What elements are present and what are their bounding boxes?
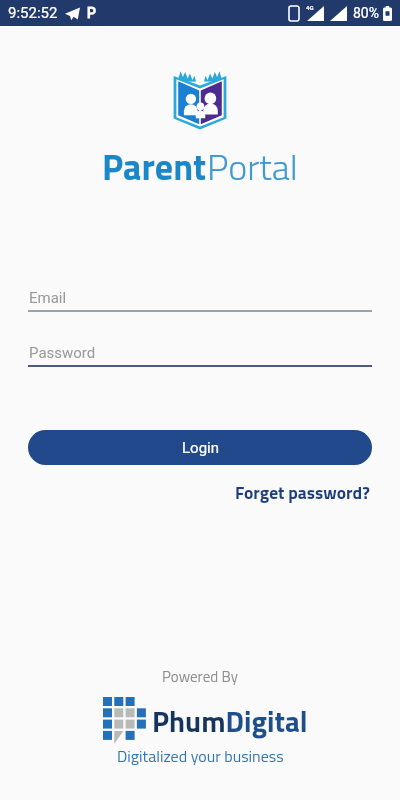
staticText: P — [87, 5, 96, 21]
staticText: Parent — [102, 139, 207, 194]
button[interactable]: Forget password? — [233, 477, 372, 508]
staticText: Digitalized your business — [117, 744, 284, 768]
staticText: Email — [29, 289, 67, 307]
staticText: 9:52:52 — [8, 4, 58, 22]
staticText: Login — [182, 439, 219, 457]
staticText: Password — [29, 344, 96, 362]
button[interactable]: Password — [28, 340, 372, 367]
staticText: 80% — [353, 5, 379, 21]
button[interactable]: Login — [28, 430, 372, 465]
button[interactable]: Email — [28, 285, 372, 312]
staticText: PhumDigital — [152, 699, 308, 743]
staticText: Portal — [207, 139, 298, 194]
staticText: Powered By — [162, 665, 238, 688]
staticText: Forget password? — [235, 479, 370, 506]
staticText: 4G — [306, 4, 314, 11]
